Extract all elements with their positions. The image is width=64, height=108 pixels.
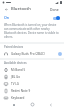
staticText: Bluetooth: [11, 6, 31, 12]
staticText: Redmi Note 9: [11, 89, 31, 93]
staticText: Done: [50, 7, 59, 12]
button[interactable]: Keyboard: [0, 94, 64, 101]
button[interactable]: Galaxy Buds Pro (2B4C): [0, 50, 64, 58]
button[interactable]: TV LG: [0, 80, 64, 87]
staticText: Available devices: [4, 61, 27, 65]
button[interactable]: Recents: [9, 101, 19, 108]
button[interactable]: On: [0, 13, 64, 22]
button[interactable]: Redmi Note 9: [0, 87, 64, 94]
staticText: Galaxy Buds Pro (2B4C): [11, 52, 45, 56]
staticText: Paired devices: [4, 45, 24, 49]
button[interactable]: Done: [48, 6, 61, 13]
button[interactable]: Mi Band 5: [0, 66, 64, 73]
button[interactable]: Back: [46, 101, 56, 108]
staticText: Keyboard: [11, 96, 25, 100]
button[interactable]: JBL Go: [0, 73, 64, 80]
staticText: JBL Go: [11, 75, 21, 79]
staticText: TV LG: [11, 82, 19, 86]
button[interactable]: Back: [3, 6, 9, 12]
staticText: On: [4, 15, 10, 20]
button[interactable]: Device settings: [56, 50, 64, 58]
staticText: Mi Band 5: [11, 68, 26, 72]
button[interactable]: Home: [27, 101, 37, 108]
staticText: When Bluetooth is turned on, your device…: [4, 23, 60, 39]
